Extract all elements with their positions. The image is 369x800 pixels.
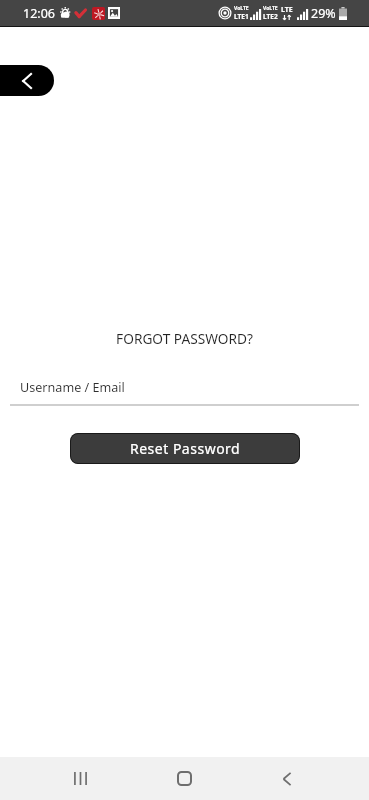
button[interactable]: Reset Password bbox=[70, 433, 300, 464]
staticText: VoLTE bbox=[234, 5, 249, 12]
staticText: Reset Password bbox=[130, 439, 241, 458]
staticText: FORGOT PASSWORD? bbox=[116, 329, 253, 348]
button[interactable]: Back bbox=[263, 757, 311, 800]
staticText: 29% bbox=[311, 5, 336, 22]
staticText: VoLTE bbox=[263, 5, 278, 12]
staticText: LTE1 bbox=[234, 12, 249, 21]
staticText: 12:06 bbox=[23, 5, 55, 22]
button[interactable]: Home bbox=[160, 757, 208, 800]
staticText: LTE bbox=[281, 5, 293, 15]
button[interactable]: Recent apps bbox=[56, 757, 104, 800]
button[interactable]: Back bbox=[0, 65, 54, 96]
staticText: Username / Email bbox=[20, 379, 125, 396]
staticText: LTE2 bbox=[263, 12, 278, 21]
